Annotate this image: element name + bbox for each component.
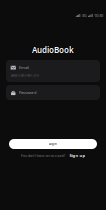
staticText: 3G — [82, 13, 87, 18]
staticText: Password — [19, 90, 36, 95]
staticText: Email — [19, 65, 29, 70]
staticText: Login — [49, 142, 57, 146]
staticText: Sign up — [69, 153, 85, 158]
button[interactable]: Login — [9, 139, 97, 149]
staticText: AudioBook — [32, 45, 74, 55]
staticText: 10:30 — [94, 13, 103, 18]
staticText: example@domain.com — [10, 74, 38, 77]
staticText: You don't have an account? — [20, 153, 65, 158]
button[interactable]: You don't have an account? — [0, 152, 106, 159]
